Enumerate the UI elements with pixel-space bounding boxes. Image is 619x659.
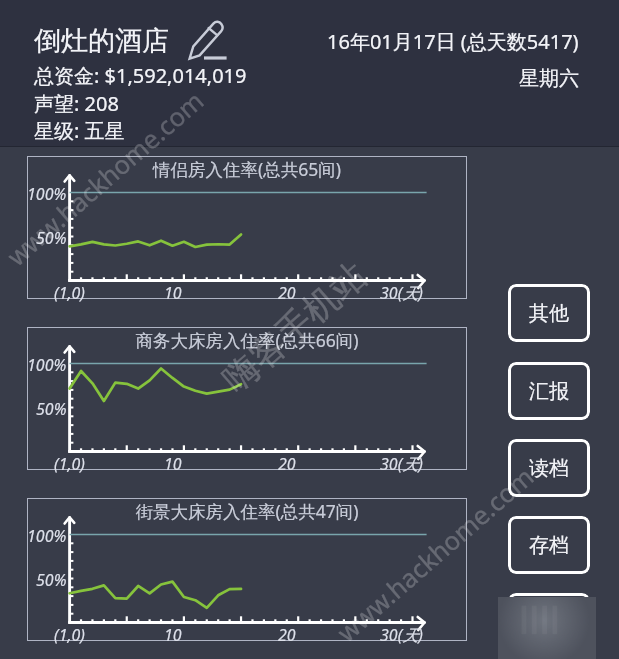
- staticText: www.hackhome.com: [329, 459, 540, 649]
- staticText: 倒灶的酒店: [34, 24, 169, 58]
- staticText: 100%: [27, 183, 67, 205]
- staticText: 20: [278, 453, 296, 475]
- staticText: 其他: [529, 301, 569, 326]
- staticText: 情侣房入住率(总共65间): [27, 157, 467, 181]
- button[interactable]: 存档: [508, 516, 590, 574]
- staticText: (1,0): [54, 453, 86, 475]
- staticText: 10: [164, 624, 182, 646]
- staticText: 30(天): [380, 282, 423, 304]
- staticText: 20: [278, 624, 296, 646]
- staticText: 街景大床房入住率(总共47间): [27, 499, 467, 523]
- staticText: 50%: [36, 569, 67, 591]
- staticText: 30(天): [380, 624, 423, 646]
- staticText: 汇报: [529, 379, 569, 404]
- staticText: 声望: 208: [34, 90, 119, 117]
- button[interactable]: 读档: [508, 439, 590, 497]
- staticText: 10: [164, 453, 182, 475]
- button[interactable]: 设置: [508, 593, 590, 651]
- staticText: (1,0): [54, 624, 86, 646]
- staticText: 16年01月17日 (总天数5417): [327, 28, 579, 55]
- staticText: www.hackhome.com: [0, 83, 210, 273]
- staticText: (1,0): [54, 282, 86, 304]
- staticText: 总资金: $1,592,014,019: [34, 62, 247, 89]
- staticText: 100%: [27, 354, 67, 376]
- staticText: 50%: [36, 398, 67, 420]
- staticText: 10: [164, 282, 182, 304]
- staticText: 存档: [529, 533, 569, 558]
- staticText: 星级: 五星: [34, 117, 125, 144]
- staticText: 100%: [27, 525, 67, 547]
- staticText: 20: [278, 282, 296, 304]
- staticText: 设置: [529, 610, 569, 635]
- button[interactable]: 其他: [508, 284, 590, 342]
- staticText: 50%: [36, 227, 67, 249]
- staticText: 30(天): [380, 453, 423, 475]
- button[interactable]: Edit hotel name: [184, 18, 228, 62]
- staticText: 嗨客手机站: [214, 253, 372, 398]
- button[interactable]: 汇报: [508, 362, 590, 420]
- staticText: 读档: [529, 456, 569, 481]
- staticText: 星期六: [519, 66, 579, 91]
- staticText: 商务大床房入住率(总共66间): [27, 328, 467, 352]
